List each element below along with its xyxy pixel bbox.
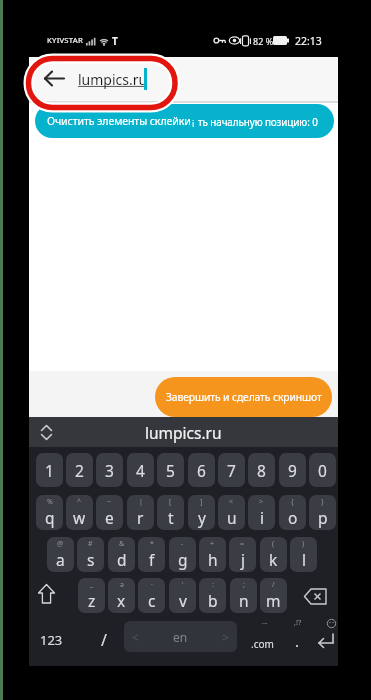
staticText: k [269,549,278,570]
staticText: > [222,629,229,645]
button[interactable]: 2 [66,453,93,487]
button[interactable] [33,580,61,611]
staticText: _ [90,580,94,590]
button[interactable]: : [199,578,226,613]
staticText: w [73,507,86,528]
button[interactable] [36,63,70,95]
button[interactable]: # [77,537,104,572]
staticText: 6 [197,460,206,481]
button[interactable]: ) [290,537,317,572]
button[interactable] [302,583,332,611]
staticText: 7 [227,460,236,481]
staticText: . [295,631,300,651]
staticText: & [119,539,125,549]
staticText: ; [243,580,245,590]
button[interactable]: 3 [96,453,123,487]
button[interactable] [35,104,334,138]
button[interactable]: 4 [127,453,154,487]
staticText: ' [182,580,184,590]
staticText: 3 [105,460,114,481]
button[interactable]: · [138,578,165,613]
button[interactable]: ə [108,578,135,613]
staticText: і [192,117,195,129]
button[interactable]: lumpics.ru [78,63,168,95]
button[interactable]: / [92,627,116,653]
staticText: g [178,549,188,570]
button[interactable]: < [218,495,245,530]
staticText: ) [302,539,305,549]
staticText: .com [251,637,274,651]
button[interactable]: [ [157,495,184,530]
staticText: z [88,590,96,611]
staticText: f [149,549,155,570]
staticText: 2 [75,460,84,481]
staticText: 123 [40,631,63,649]
button[interactable]: } [309,495,336,530]
staticText: ^ [77,497,82,507]
staticText: u [227,507,237,528]
button[interactable]: - [169,537,196,572]
staticText: > [259,497,264,507]
staticText: x [117,590,126,611]
button[interactable]: . [288,630,306,652]
button[interactable]: ' [169,578,196,613]
button[interactable]: & [108,537,135,572]
button[interactable]: * [138,537,165,572]
staticText: { [291,497,294,507]
button[interactable]: ( [260,537,287,572]
staticText: lumpics.ru [78,70,148,89]
button[interactable]: ] [188,495,215,530]
button[interactable]: 123 [35,630,67,650]
button[interactable]: + [199,537,226,572]
staticText: r [137,507,144,528]
button[interactable]: ^ [66,495,93,530]
staticText: b [208,590,218,611]
staticText: d [117,549,127,570]
button[interactable]: 9 [279,453,306,487]
staticText: e [105,507,114,528]
button[interactable]: { [279,495,306,530]
button[interactable]: 6 [188,453,215,487]
button[interactable]: % [36,495,63,530]
button[interactable] [314,628,338,654]
staticText: q [45,507,55,528]
button[interactable]: 8 [248,453,275,487]
button[interactable]: ~ [96,495,123,530]
staticText: ,!? [294,617,302,627]
staticText: - [181,539,184,549]
button[interactable]: .com [246,635,278,653]
staticText: i [260,507,264,528]
button[interactable]: _ [78,578,105,613]
button[interactable]: ; [230,578,257,613]
staticText: * [150,539,154,549]
staticText: t [168,507,174,528]
button[interactable]: 7 [218,453,245,487]
button[interactable]: @ [47,537,74,572]
button[interactable]: en [124,621,237,652]
staticText: # [88,539,93,549]
staticText: m [266,590,281,611]
staticText: h [208,549,218,570]
staticText: < [229,497,234,507]
staticText: 4 [136,460,145,481]
staticText: [ [169,497,172,507]
button[interactable]: 5 [157,453,184,487]
staticText: l [302,549,306,570]
button[interactable]: 1 [36,453,63,487]
staticText: 9 [288,460,297,481]
staticText: T [112,34,118,48]
button[interactable]: 0 [309,453,336,487]
button[interactable]: > [248,495,275,530]
staticText: = [240,539,245,549]
staticText: o [288,507,298,528]
button[interactable]: / [260,578,287,613]
button[interactable]: | [127,495,154,530]
staticText: : [212,580,214,590]
staticText: y [198,507,206,528]
button[interactable]: = [229,537,256,572]
staticText: 22:13 [295,34,322,48]
staticText: 1 [45,460,54,481]
button[interactable] [29,417,338,447]
button[interactable]: Завершить и сделать скриншот [155,377,332,417]
staticText: % [47,497,53,507]
